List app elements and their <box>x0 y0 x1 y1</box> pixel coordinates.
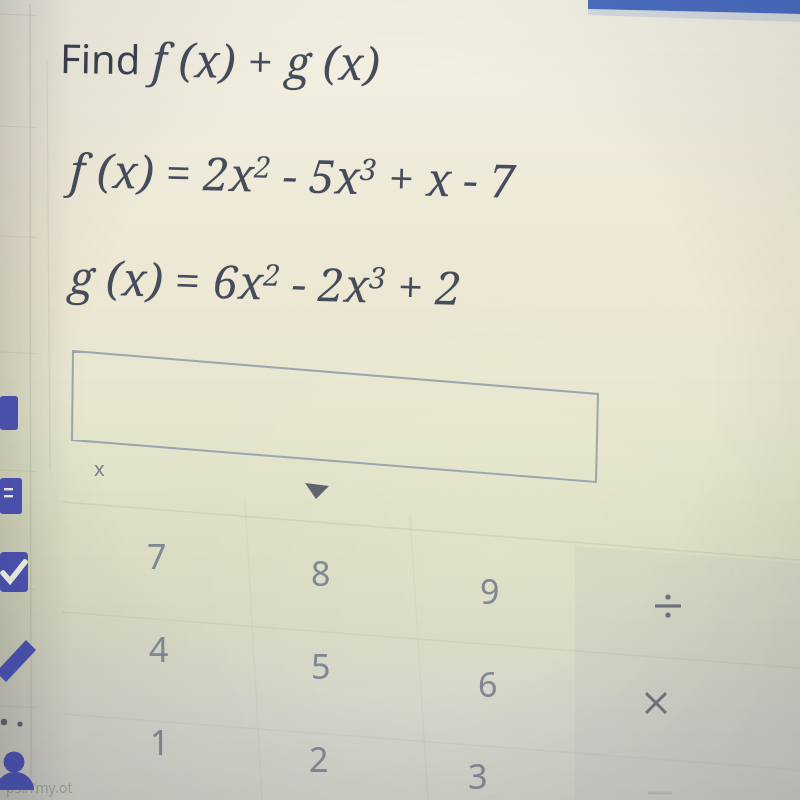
button[interactable]: Open variable dropdown <box>292 476 342 506</box>
button[interactable]: Divide <box>580 560 740 655</box>
button[interactable]: 4 <box>100 604 250 696</box>
button[interactable]: 7 <box>100 512 250 604</box>
button[interactable]: 3 <box>415 731 565 800</box>
button[interactable]: Bookmark <box>0 390 34 436</box>
button[interactable]: Assignments <box>0 548 36 598</box>
button[interactable]: Answer input field <box>73 351 598 482</box>
button[interactable]: More options <box>0 710 34 740</box>
button[interactable]: 1 <box>100 697 250 789</box>
button[interactable]: Multiply <box>580 655 740 750</box>
button[interactable]: Documents <box>0 472 34 520</box>
button[interactable]: 2 <box>250 714 400 800</box>
button[interactable]: 8 <box>250 528 400 620</box>
button[interactable]: Edit <box>0 634 42 688</box>
button[interactable]: 6 <box>415 639 565 731</box>
button[interactable]: Account <box>0 746 38 800</box>
button[interactable]: 5 <box>250 621 400 713</box>
button[interactable]: 9 <box>415 546 565 638</box>
